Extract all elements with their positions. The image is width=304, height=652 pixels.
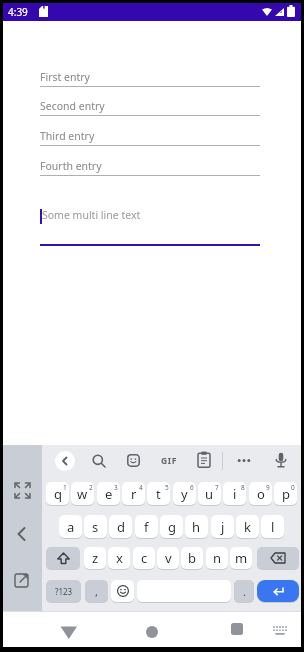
staticText: o — [257, 485, 265, 503]
staticText: 2 — [89, 483, 93, 490]
button[interactable]: a — [59, 515, 82, 538]
staticText: 9 — [266, 483, 270, 490]
button[interactable] — [46, 547, 80, 569]
staticText: . — [243, 584, 246, 599]
button[interactable]: r — [122, 482, 145, 505]
button[interactable] — [40, 204, 260, 244]
staticText: l — [271, 518, 275, 536]
staticText: 1 — [63, 483, 67, 490]
staticText: Third entry — [40, 129, 95, 143]
button[interactable]: Second entry — [40, 96, 260, 116]
button[interactable] — [111, 580, 134, 602]
button[interactable]: z — [84, 547, 106, 569]
staticText: j — [221, 518, 225, 536]
button[interactable]: b — [181, 547, 203, 569]
staticText: w — [77, 485, 88, 503]
staticText: t — [156, 485, 161, 503]
staticText: a — [67, 518, 75, 536]
button[interactable] — [146, 626, 158, 638]
button[interactable]: j — [211, 515, 234, 538]
button[interactable]: u — [198, 482, 221, 505]
button[interactable]: w — [71, 482, 94, 505]
button[interactable] — [127, 454, 140, 467]
staticText: First entry — [40, 70, 90, 84]
button[interactable] — [257, 547, 299, 569]
button[interactable]: y — [173, 482, 196, 505]
button[interactable]: First entry — [40, 67, 260, 87]
button[interactable] — [197, 451, 211, 468]
staticText: p — [282, 485, 290, 503]
button[interactable] — [55, 451, 75, 471]
staticText: , — [95, 584, 98, 599]
staticText: s — [92, 518, 99, 536]
staticText: Some multi line text — [42, 208, 141, 222]
button[interactable]: q — [46, 482, 69, 505]
button[interactable]: Fourth entry — [40, 156, 260, 176]
staticText: e — [105, 485, 113, 503]
staticText: y — [181, 485, 188, 503]
staticText: Second entry — [40, 99, 105, 113]
button[interactable]: m — [230, 547, 252, 569]
button[interactable] — [237, 454, 251, 467]
button[interactable]: f — [135, 515, 158, 538]
button[interactable] — [231, 623, 243, 635]
button[interactable]: ?123 — [46, 580, 81, 602]
staticText: GIF — [161, 455, 178, 467]
staticText: m — [235, 549, 248, 567]
button[interactable] — [91, 453, 107, 469]
button[interactable]: e — [97, 482, 120, 505]
button[interactable] — [273, 452, 289, 469]
staticText: ?123 — [55, 586, 73, 597]
staticText: u — [205, 485, 214, 503]
staticText: q — [54, 485, 62, 503]
button[interactable]: o — [249, 482, 272, 505]
button[interactable]: GIF — [157, 453, 181, 468]
button[interactable] — [14, 482, 31, 499]
staticText: 3 — [114, 483, 118, 490]
staticText: g — [168, 518, 176, 536]
button[interactable]: h — [185, 515, 208, 538]
staticText: r — [131, 485, 137, 503]
staticText: k — [244, 518, 251, 536]
button[interactable] — [14, 571, 31, 588]
button[interactable] — [257, 580, 299, 602]
staticText: 5 — [165, 483, 169, 490]
button[interactable] — [16, 527, 28, 541]
button[interactable]: l — [261, 515, 284, 538]
button[interactable] — [60, 626, 78, 640]
staticText: 0 — [291, 483, 295, 490]
button[interactable] — [272, 625, 288, 637]
staticText: 8 — [241, 483, 245, 490]
staticText: n — [213, 549, 222, 567]
button[interactable] — [137, 580, 231, 602]
button[interactable]: c — [133, 547, 155, 569]
staticText: v — [165, 549, 172, 567]
staticText: i — [233, 485, 237, 503]
button[interactable]: s — [84, 515, 107, 538]
button[interactable]: k — [236, 515, 259, 538]
staticText: b — [188, 549, 196, 567]
button[interactable]: d — [109, 515, 132, 538]
staticText: 6 — [190, 483, 194, 490]
staticText: c — [141, 549, 148, 567]
button[interactable]: p — [274, 482, 297, 505]
staticText: f — [144, 518, 149, 536]
staticText: Fourth entry — [40, 159, 102, 173]
button[interactable]: t — [147, 482, 170, 505]
button[interactable]: . — [234, 580, 254, 602]
staticText: 4 — [139, 483, 143, 490]
button[interactable]: n — [206, 547, 228, 569]
button[interactable]: x — [108, 547, 130, 569]
staticText: x — [116, 549, 123, 567]
staticText: 4:39 — [8, 5, 28, 19]
button[interactable]: v — [157, 547, 179, 569]
staticText: h — [192, 518, 201, 536]
staticText: z — [92, 549, 99, 567]
staticText: 7 — [215, 483, 219, 490]
button[interactable]: Third entry — [40, 126, 260, 146]
button[interactable]: g — [160, 515, 183, 538]
button[interactable]: , — [85, 580, 108, 602]
staticText: d — [117, 518, 125, 536]
button[interactable]: i — [223, 482, 246, 505]
